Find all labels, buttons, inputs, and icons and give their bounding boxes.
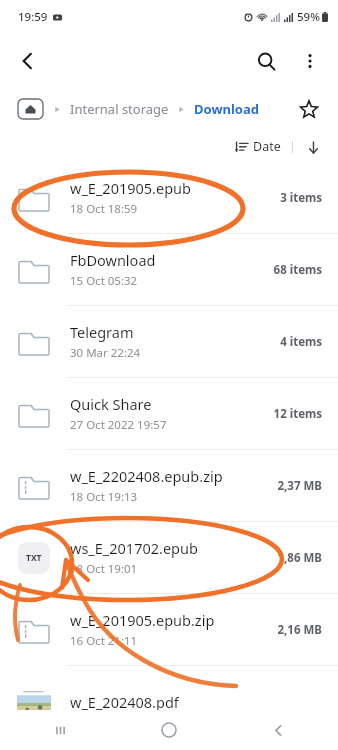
button[interactable]: Download bbox=[194, 100, 259, 118]
button[interactable]: Quick Share bbox=[0, 378, 338, 449]
staticText: 12 items bbox=[273, 406, 322, 422]
button[interactable]: Home bbox=[149, 710, 189, 750]
staticText: 2,37 MB bbox=[277, 478, 322, 494]
button[interactable]: FbDownload bbox=[0, 234, 338, 305]
button[interactable]: Add to favourites bbox=[290, 90, 328, 128]
button[interactable]: More options bbox=[288, 39, 332, 83]
staticText: 4 items bbox=[280, 334, 322, 350]
staticText: 3 items bbox=[280, 190, 322, 206]
staticText: 19:59 bbox=[18, 9, 48, 25]
button[interactable]: w_E_201905.epub bbox=[0, 162, 338, 233]
staticText: 1,86 MB bbox=[277, 550, 322, 566]
staticText: 59% bbox=[297, 9, 320, 25]
staticText: 15 Oct 05:32 bbox=[70, 273, 138, 289]
button[interactable]: Search bbox=[244, 39, 288, 83]
button[interactable]: TXT bbox=[0, 522, 338, 593]
button[interactable]: Home bbox=[18, 99, 43, 119]
staticText: 30 Mar 22:24 bbox=[70, 345, 141, 361]
staticText: 18 Oct 18:59 bbox=[70, 201, 138, 217]
staticText: 18 Oct 19:13 bbox=[70, 489, 138, 505]
button[interactable]: w_E_2202408.epub.zip bbox=[0, 450, 338, 521]
staticText: ws_E_201702.epub bbox=[70, 538, 198, 558]
staticText: FbDownload bbox=[70, 250, 156, 270]
staticText: 16 Oct 21:11 bbox=[70, 633, 138, 649]
staticText: w_E_2202408.epub.zip bbox=[70, 466, 223, 486]
button[interactable]: Recent apps bbox=[40, 710, 80, 750]
staticText: 27 Oct 2022 19:57 bbox=[70, 417, 167, 433]
staticText: w_E_201905.epub bbox=[70, 178, 191, 198]
staticText: 68 items bbox=[273, 262, 322, 278]
button[interactable]: Telegram bbox=[0, 306, 338, 377]
button[interactable]: w_E_201905.epub.zip bbox=[0, 594, 338, 665]
button[interactable]: w_E_202408.pdf bbox=[0, 666, 338, 737]
staticText: Date bbox=[253, 138, 281, 155]
staticText: 2,16 MB bbox=[277, 622, 322, 638]
button[interactable]: Back bbox=[258, 710, 298, 750]
staticText: Telegram bbox=[70, 322, 134, 342]
button[interactable]: Sort direction bbox=[302, 136, 324, 158]
staticText: w_E_201905.epub.zip bbox=[70, 610, 215, 630]
button[interactable]: Back bbox=[6, 39, 50, 83]
button[interactable]: Date bbox=[233, 134, 283, 159]
button[interactable]: Internal storage bbox=[70, 100, 169, 118]
staticText: TXT bbox=[26, 552, 42, 564]
staticText: 18 Oct 19:01 bbox=[70, 561, 138, 577]
staticText: w_E_202408.pdf bbox=[70, 692, 179, 712]
staticText: Quick Share bbox=[70, 394, 152, 414]
